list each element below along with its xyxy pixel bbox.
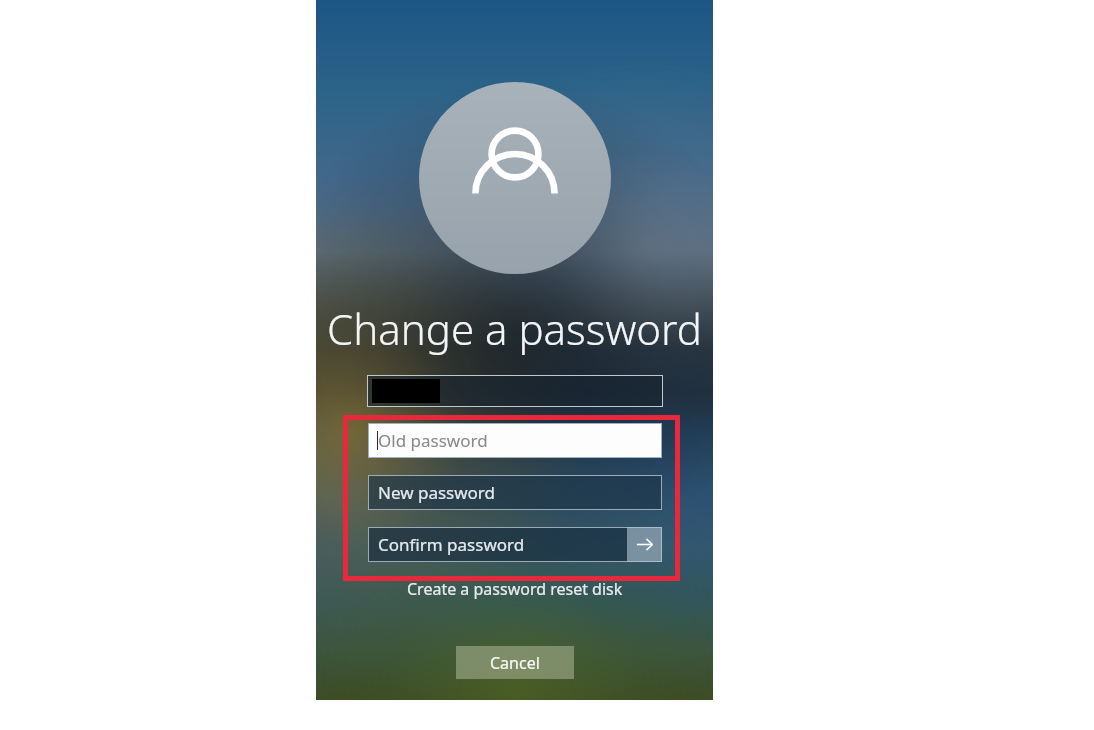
staticText: Create a password reset disk [407,578,623,600]
button[interactable]: Old password [368,423,662,458]
staticText: Old password [378,429,488,452]
button[interactable]: Cancel [456,646,574,679]
staticText: Change a password [327,300,702,357]
button[interactable]: Create a password reset disk [403,576,627,602]
staticText: Cancel [490,652,540,674]
button[interactable]: Submit [627,527,662,562]
staticText: New password [378,481,496,504]
button[interactable]: New password [368,475,662,510]
staticText: Confirm password [378,533,525,556]
button[interactable]: User account picture [419,82,611,274]
button[interactable]: Confirm password [368,527,627,562]
button[interactable] [367,375,663,407]
